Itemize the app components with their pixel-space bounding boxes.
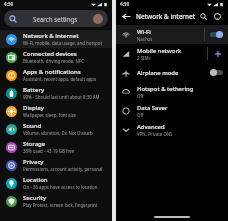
button[interactable]: Advanced: [116, 120, 228, 139]
button[interactable]: Search: [198, 11, 209, 22]
button[interactable]: Sound: [0, 120, 112, 138]
staticText: Wi-Fi: [137, 28, 151, 36]
button[interactable]: Display: [0, 102, 112, 120]
button[interactable]: Network & internet: [0, 30, 112, 48]
staticText: Battery: [23, 86, 45, 94]
staticText: Network & internet: [136, 12, 196, 21]
staticText: Assistant, recent apps, default apps: [23, 76, 97, 82]
button[interactable]: Security: [0, 192, 112, 210]
staticText: Storage: [23, 140, 46, 148]
staticText: Data Saver: [137, 104, 168, 112]
staticText: Sound: [23, 122, 42, 130]
staticText: Apps & notifications: [23, 68, 81, 76]
staticText: Security: [23, 194, 47, 202]
staticText: 4:39: [120, 1, 130, 7]
staticText: Wallpaper, sleep, font size: [23, 112, 77, 118]
staticText: VPN, Private DNS: [137, 131, 173, 137]
staticText: Hotspot & tethering: [137, 85, 194, 93]
staticText: Permissions, account activity, personal …: [23, 166, 106, 172]
button[interactable]: Connected devices: [0, 48, 112, 66]
staticText: Off: [137, 112, 144, 118]
button[interactable]: Airplane mode: [116, 63, 228, 82]
button[interactable]: Search settings: [4, 10, 108, 27]
staticText: Location: [23, 176, 48, 184]
button[interactable]: Wi-Fi: [116, 25, 228, 44]
staticText: 4:39: [4, 1, 14, 7]
button[interactable]: Location: [0, 174, 112, 192]
button[interactable]: Help: [212, 11, 223, 22]
staticText: Display: [23, 104, 44, 112]
button[interactable]: Back: [121, 11, 132, 22]
button[interactable]: Account: [93, 14, 103, 24]
staticText: Nachos: [137, 36, 153, 42]
staticText: On - 36 apps have access to location: [23, 184, 98, 190]
button[interactable]: Data Saver: [116, 101, 228, 120]
staticText: 99% - Should last until about 8:30 AM: [23, 94, 100, 100]
staticText: 33% used - 43.19 GB free: [23, 148, 75, 154]
button[interactable]: Add: [213, 49, 223, 59]
staticText: Volume, vibration, Do Not Disturb: [23, 130, 93, 136]
staticText: Network & internet: [23, 32, 79, 40]
staticText: Privacy: [23, 158, 44, 166]
staticText: Connected devices: [23, 50, 77, 58]
button[interactable]: Toggle: [210, 30, 223, 39]
button[interactable]: Storage: [0, 138, 112, 156]
button[interactable]: Battery: [0, 84, 112, 102]
staticText: Play Protect, screen lock, fingerprint: [23, 202, 98, 208]
button[interactable]: Toggle: [210, 68, 223, 77]
staticText: Mobile network: [137, 47, 182, 55]
staticText: Bluetooth, driving mode, NFC: [23, 58, 84, 64]
button[interactable]: Mobile network: [116, 44, 228, 63]
staticText: 2 SIMs: [137, 55, 151, 61]
staticText: Airplane mode: [137, 69, 179, 77]
button[interactable]: Hotspot & tethering: [116, 82, 228, 101]
staticText: Advanced: [137, 123, 165, 131]
button[interactable]: Apps & notifications: [0, 66, 112, 84]
staticText: Search settings: [33, 15, 78, 23]
staticText: Off: [137, 93, 144, 99]
button[interactable]: Privacy: [0, 156, 112, 174]
staticText: Wi-Fi, mobile, data usage, and hotspot: [23, 40, 103, 46]
